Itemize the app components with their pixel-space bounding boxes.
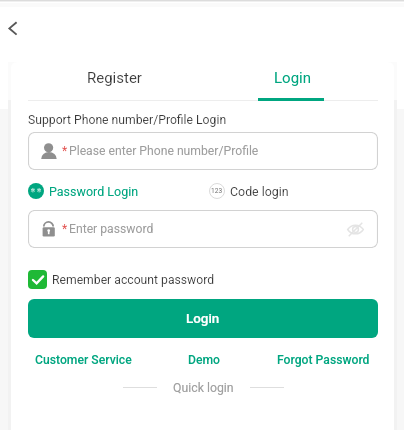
button[interactable]: Forgot Password [277,353,370,367]
button[interactable]: 123 [209,183,289,199]
button[interactable]: Back [0,12,32,44]
button[interactable]: * [28,210,378,248]
staticText: Login [186,311,220,327]
staticText: Login [274,69,311,87]
staticText: Remember account password [52,273,215,287]
button[interactable]: Password Login [28,183,139,199]
button[interactable]: Customer Service [35,353,132,367]
staticText: Code login [230,184,289,199]
staticText: * [62,222,68,236]
staticText: Enter password [69,222,154,236]
staticText: Register [87,69,142,87]
button[interactable]: Demo [188,353,221,367]
button[interactable]: Show password [347,221,364,238]
staticText: * [62,144,68,158]
staticText: Password Login [49,184,139,199]
staticText: 123 [211,187,223,195]
button[interactable]: Remember account password [28,270,215,289]
staticText: Quick login [173,381,234,395]
button[interactable]: Login [28,299,378,338]
button[interactable]: Register [25,69,203,100]
button[interactable]: * [28,132,378,170]
staticText: Support Phone number/Profile Login [28,113,227,127]
staticText: Please enter Phone number/Profile [69,144,259,158]
button[interactable]: Login [203,69,382,100]
